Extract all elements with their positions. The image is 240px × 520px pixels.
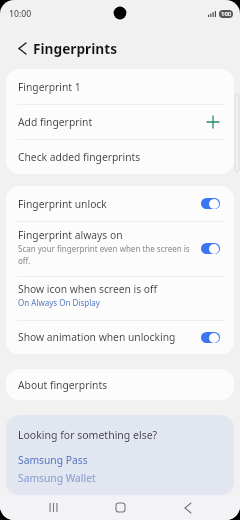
button[interactable]: Fingerprint unlock bbox=[6, 186, 234, 221]
staticText: Check added fingerprints bbox=[18, 150, 141, 164]
button[interactable]: Show animation when unlocking bbox=[6, 320, 234, 354]
button[interactable]: Home bbox=[105, 495, 135, 520]
staticText: About fingerprints bbox=[18, 378, 108, 392]
button[interactable]: Samsung Pass bbox=[6, 451, 234, 469]
button[interactable]: Add fingerprint bbox=[6, 104, 234, 139]
button[interactable]: Navigate up bbox=[11, 37, 33, 59]
button[interactable]: About fingerprints bbox=[6, 369, 234, 400]
button[interactable]: Fingerprint 1 bbox=[6, 69, 234, 104]
button[interactable]: Show animation when unlocking bbox=[201, 332, 220, 343]
button[interactable]: Check added fingerprints bbox=[6, 139, 234, 174]
staticText: Samsung Pass bbox=[18, 453, 88, 467]
staticText: Add fingerprint bbox=[18, 115, 93, 129]
button[interactable]: Samsung Wallet bbox=[6, 469, 234, 487]
staticText: Fingerprint unlock bbox=[18, 197, 107, 211]
staticText: Samsung Wallet bbox=[18, 471, 96, 485]
staticText: Show animation when unlocking bbox=[18, 330, 176, 344]
staticText: 10:00 bbox=[9, 8, 32, 20]
staticText: 100 bbox=[221, 10, 232, 18]
button[interactable]: Fingerprint always on bbox=[201, 243, 220, 254]
button[interactable]: Back bbox=[173, 495, 203, 520]
staticText: Looking for something else? bbox=[18, 428, 158, 442]
staticText: Show icon when screen is off bbox=[18, 282, 158, 296]
staticText: Fingerprint 1 bbox=[18, 80, 81, 94]
staticText: On Always On Display bbox=[18, 297, 100, 308]
button[interactable]: Fingerprint always on bbox=[6, 221, 234, 276]
button[interactable]: Fingerprint unlock bbox=[201, 198, 220, 209]
staticText: Fingerprints bbox=[33, 39, 118, 58]
staticText: Fingerprint always on bbox=[18, 228, 123, 242]
button[interactable]: Recents bbox=[38, 495, 68, 520]
staticText: Scan your fingerprint even when the scre… bbox=[18, 243, 197, 266]
button[interactable]: Show icon when screen is off bbox=[6, 276, 234, 320]
